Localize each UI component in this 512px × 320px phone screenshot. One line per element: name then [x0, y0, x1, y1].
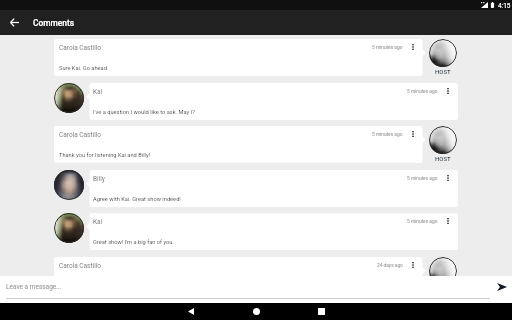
- staticText: Agree with Kai. Great show indeed!: [93, 196, 181, 203]
- staticText: Leave a message...: [6, 283, 62, 291]
- button[interactable]: Home: [247, 303, 265, 320]
- button[interactable]: Navigate up: [0, 10, 29, 35]
- staticText: Great show! I'm a big fan of you.: [93, 239, 174, 246]
- staticText: Billy: [93, 175, 105, 183]
- button[interactable]: More options: [447, 175, 449, 181]
- button[interactable]: More options: [412, 262, 414, 268]
- staticText: Sure Kai. Go ahead: [59, 65, 107, 72]
- staticText: 24 days ago: [377, 263, 403, 269]
- staticText: Kai: [93, 218, 103, 226]
- button[interactable]: Back: [182, 303, 200, 320]
- staticText: 5 minutes ago: [372, 132, 403, 138]
- staticText: 4:15: [498, 2, 511, 10]
- staticText: I've a question I would like to ask. May…: [93, 109, 195, 116]
- staticText: Carola Castillo: [59, 131, 102, 139]
- staticText: Carola Castillo: [59, 44, 102, 52]
- staticText: Carola Castillo: [59, 262, 102, 270]
- staticText: Comments: [33, 18, 75, 28]
- button[interactable]: More options: [447, 218, 449, 224]
- button[interactable]: More options: [412, 131, 414, 137]
- button[interactable]: Leave a message: [0, 278, 470, 296]
- button[interactable]: Recent apps: [312, 303, 330, 320]
- staticText: Kai: [93, 88, 103, 96]
- staticText: 5 minutes ago: [372, 45, 403, 51]
- staticText: 5 minutes ago: [407, 89, 438, 95]
- button[interactable]: More options: [447, 88, 449, 94]
- staticText: HOST: [435, 155, 451, 162]
- staticText: 5 minutes ago: [407, 176, 438, 182]
- button[interactable]: More options: [412, 44, 414, 50]
- staticText: Thank you for listening Kai and Billy!: [59, 152, 151, 159]
- button[interactable]: Send: [494, 279, 510, 295]
- staticText: 5 minutes ago: [407, 219, 438, 225]
- staticText: HOST: [435, 68, 451, 75]
